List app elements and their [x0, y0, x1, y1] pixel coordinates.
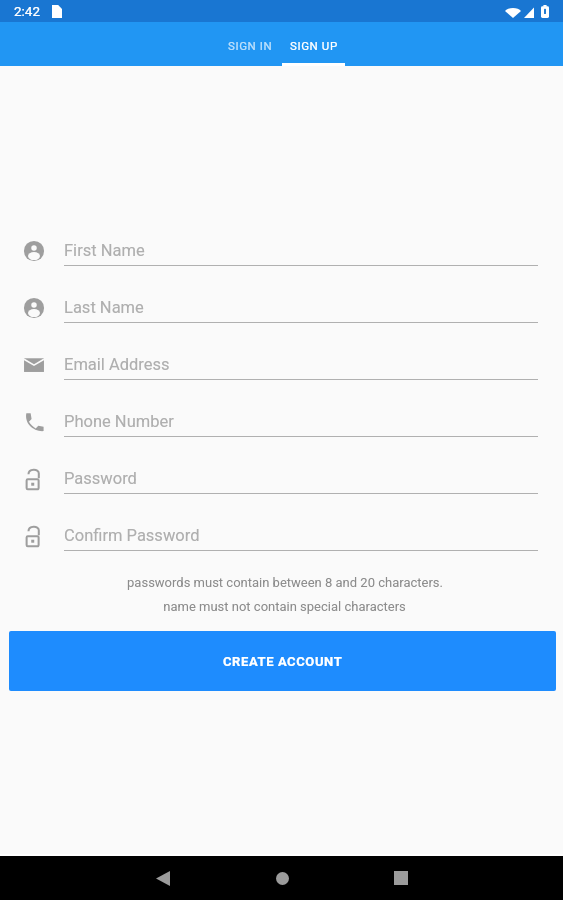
staticText: Last Name — [64, 298, 144, 317]
staticText: Confirm Password — [64, 526, 200, 545]
button[interactable]: Email Address — [0, 339, 563, 396]
staticText: First Name — [64, 241, 145, 260]
staticText: Password — [64, 469, 137, 488]
staticText: Email Address — [64, 355, 170, 374]
button[interactable]: SIGN UP — [282, 22, 345, 66]
staticText: Phone Number — [64, 412, 174, 431]
button[interactable]: CREATE ACCOUNT — [9, 631, 556, 691]
button[interactable]: SIGN IN — [219, 22, 282, 66]
button[interactable]: Recent apps — [373, 856, 429, 900]
staticText: SIGN UP — [290, 39, 338, 52]
button[interactable]: Confirm Password — [0, 510, 563, 567]
staticText: passwords must contain between 8 and 20 … — [127, 575, 443, 590]
button[interactable]: Last Name — [0, 282, 563, 339]
button[interactable]: Phone Number — [0, 396, 563, 453]
button[interactable]: Password — [0, 453, 563, 510]
staticText: name must not contain special characters — [163, 599, 406, 614]
button[interactable]: First Name — [0, 225, 563, 282]
button[interactable]: Back — [135, 856, 191, 900]
staticText: SIGN IN — [228, 39, 273, 52]
staticText: 2:42 — [14, 3, 41, 19]
staticText: CREATE ACCOUNT — [223, 654, 343, 669]
button[interactable]: Home — [254, 856, 310, 900]
